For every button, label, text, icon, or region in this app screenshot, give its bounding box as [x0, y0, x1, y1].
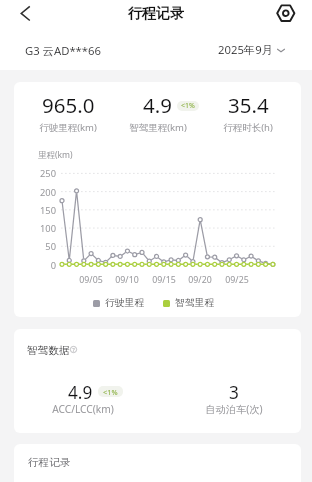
staticText: 150 — [24, 204, 56, 217]
staticText: 250 — [24, 167, 56, 180]
button[interactable]: Back — [13, 1, 37, 25]
staticText: 200 — [24, 186, 56, 199]
staticText: 行程记录 — [0, 4, 312, 22]
staticText: 行驶里程(km) — [14, 121, 128, 134]
staticText: 3 — [229, 381, 239, 404]
staticText: 智驾数据 — [27, 344, 70, 357]
staticText: 行程记录 — [28, 456, 71, 469]
staticText: 50 — [24, 240, 56, 253]
staticText: 自动泊车(次) — [174, 402, 294, 416]
staticText: 965.0 — [42, 91, 95, 119]
staticText: 09/10 — [107, 274, 147, 286]
staticText: G3 云AD***66 — [25, 43, 101, 58]
staticText: 09/05 — [71, 274, 111, 286]
staticText: 0 — [24, 259, 56, 272]
staticText: 4.9 — [68, 381, 93, 404]
staticText: 行程时长(h) — [188, 121, 301, 134]
staticText: 35.4 — [228, 91, 269, 119]
staticText: <1% — [181, 101, 195, 111]
staticText: 2025年9月 — [218, 42, 273, 57]
button[interactable]: Settings — [274, 1, 298, 25]
staticText: 智驾里程 — [175, 297, 215, 309]
staticText: 09/25 — [217, 274, 257, 286]
staticText: 里程(km) — [38, 149, 73, 161]
staticText: 4.9 — [143, 91, 172, 119]
staticText: <1% — [103, 387, 118, 397]
button[interactable]: 2025年9月 — [218, 42, 285, 57]
staticText: 09/15 — [144, 274, 184, 286]
staticText: 09/20 — [180, 274, 220, 286]
staticText: 100 — [24, 222, 56, 235]
staticText: 行驶里程 — [105, 297, 145, 309]
staticText: ACC/LCC(km) — [23, 402, 143, 416]
staticText: ? — [72, 346, 75, 353]
staticText: 智驾里程(km) — [98, 121, 218, 134]
